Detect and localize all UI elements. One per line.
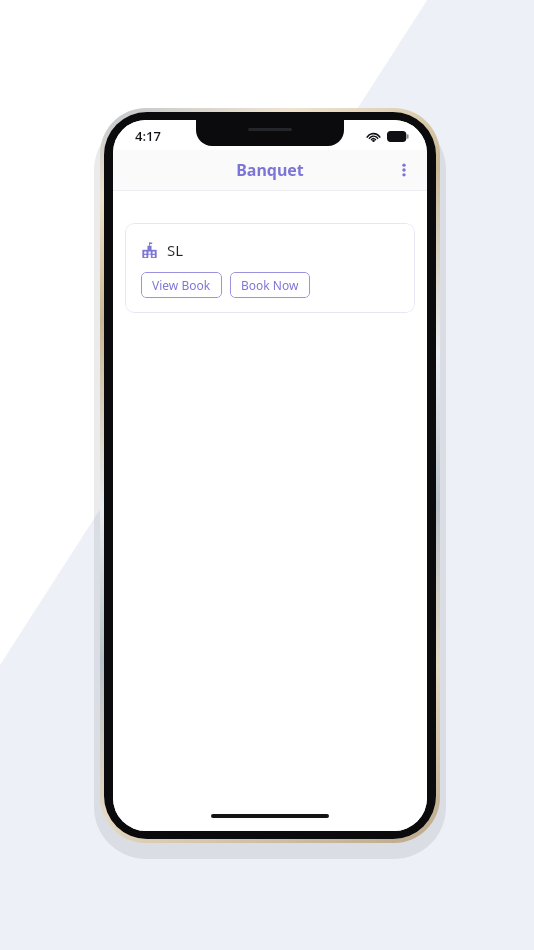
staticText: SL [167,240,184,260]
button[interactable]: View Book [141,272,222,298]
staticText: Book Now [241,277,299,293]
staticText: 4:17 [135,127,161,145]
button[interactable]: Book Now [230,272,310,298]
button[interactable]: SL [125,223,415,313]
staticText: View Book [152,277,211,293]
button[interactable]: More options [387,153,421,187]
staticText: Banquet [236,159,304,181]
